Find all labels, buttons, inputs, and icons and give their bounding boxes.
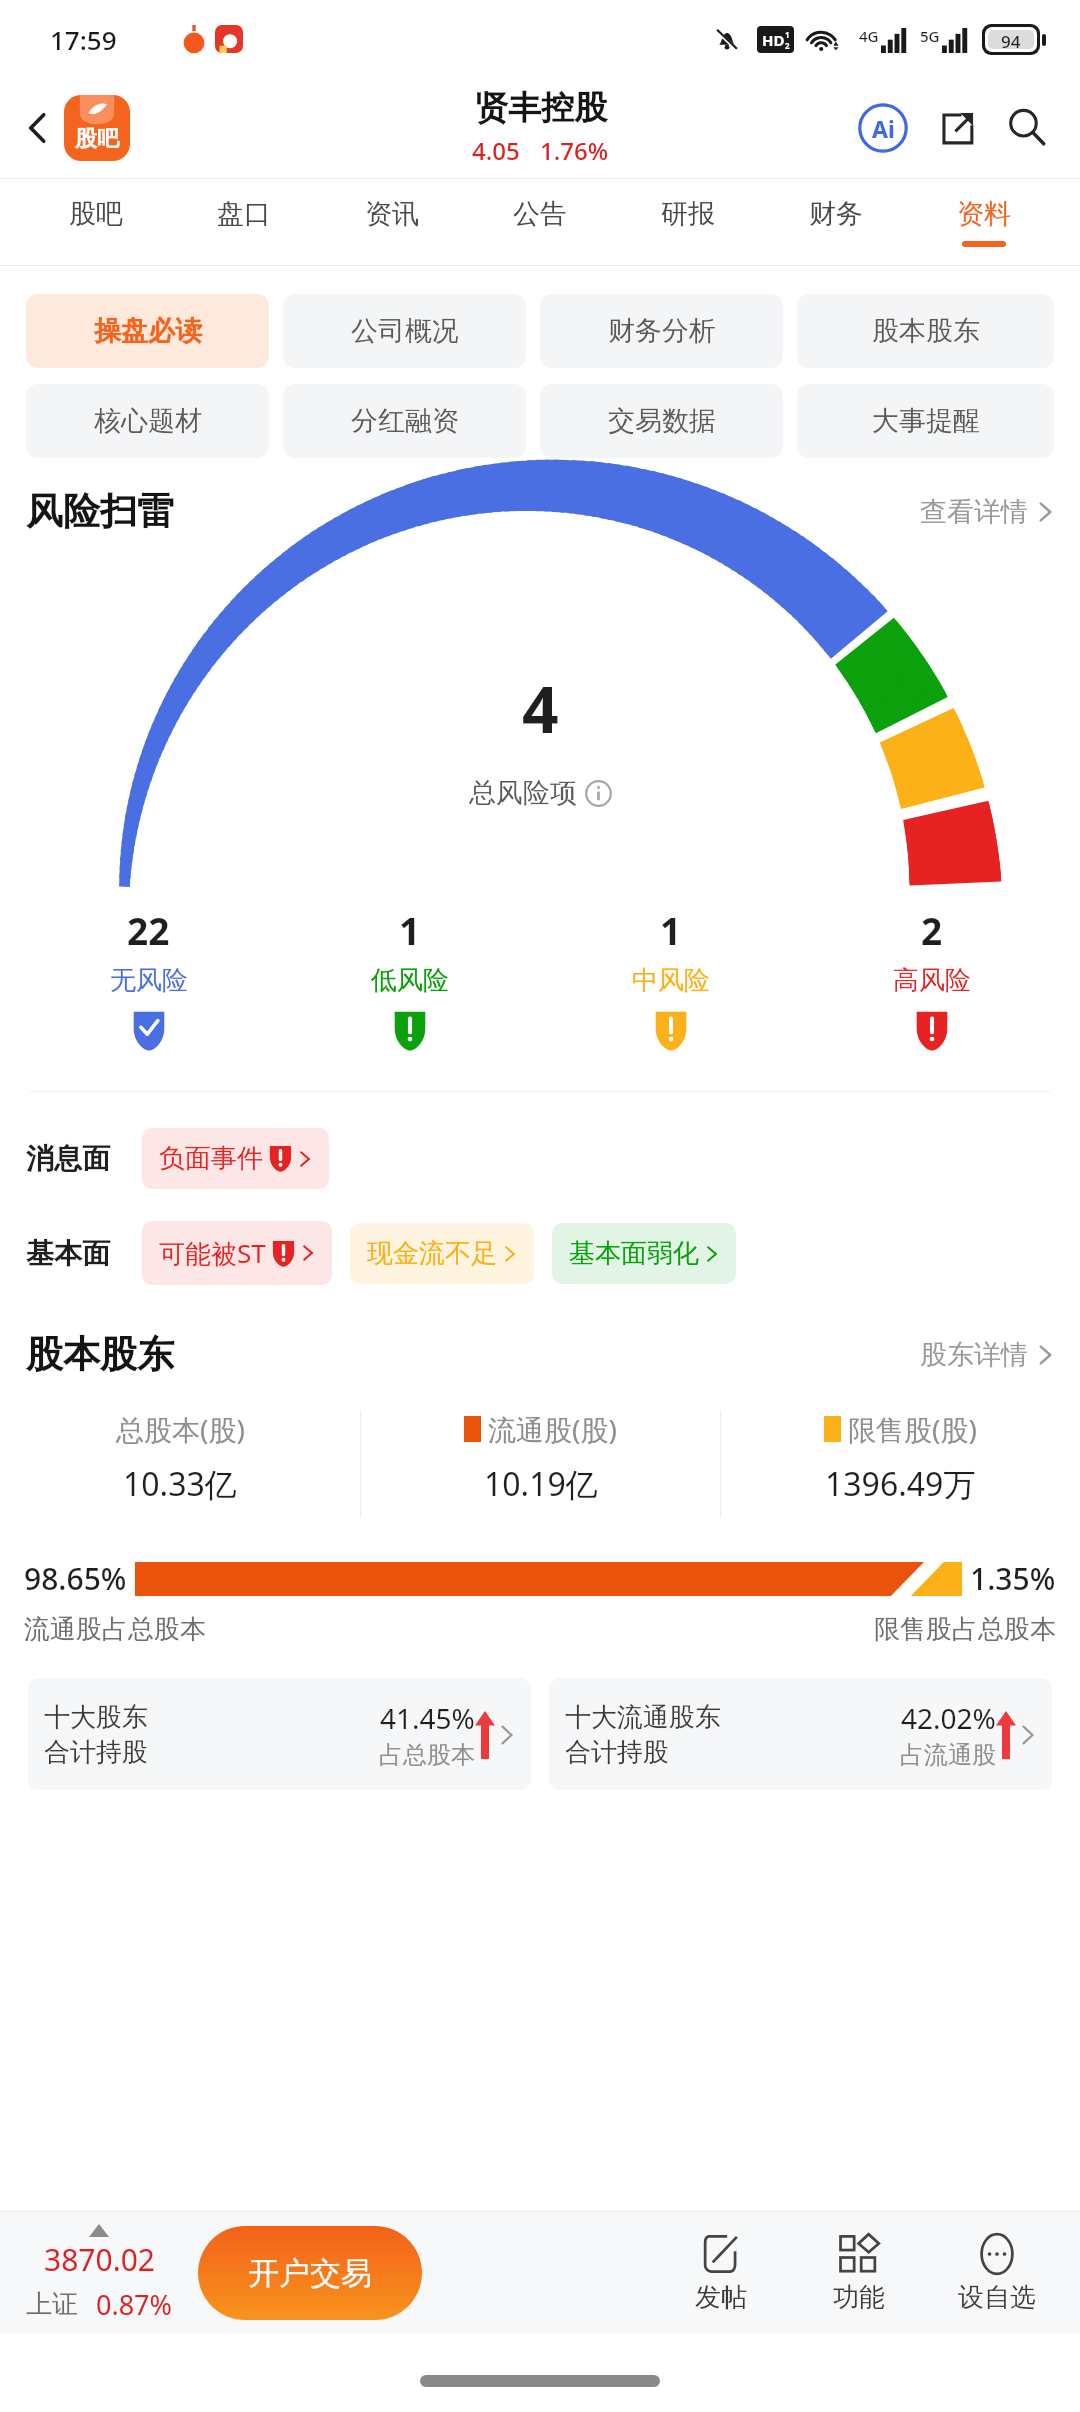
button[interactable]: 3870.02 [0, 2224, 198, 2323]
button[interactable]: 资讯 [318, 179, 466, 265]
staticText: 10.19亿 [484, 1462, 598, 1506]
staticText: 流通股占总股本 [24, 1613, 206, 1646]
staticText: Ai [872, 113, 895, 144]
staticText: 基本面 [26, 1236, 110, 1271]
button[interactable]: 十大流通股东 合计持股 [549, 1678, 1052, 1790]
staticText: 高风险 [893, 964, 971, 997]
button[interactable]: 交易数据 [540, 384, 783, 458]
staticText: 0.87% [96, 2286, 173, 2323]
staticText: 流通股(股) [488, 1410, 617, 1448]
staticText: 中风险 [632, 964, 710, 997]
staticText: 低风险 [371, 964, 449, 997]
button[interactable]: 盘口 [170, 179, 318, 265]
staticText: 4G [859, 26, 879, 46]
staticText: 消息面 [26, 1141, 110, 1176]
button[interactable]: 财务 [762, 179, 910, 265]
staticText: 上证 [26, 2288, 78, 2321]
staticText: 十大流通股东 合计持股 [565, 1701, 721, 1769]
staticText: 17:59 [50, 22, 117, 57]
staticText: 财务分析 [608, 314, 716, 348]
staticText: 股本股东 [26, 1331, 174, 1378]
button[interactable]: 十大股东 合计持股 [28, 1678, 531, 1790]
staticText: 现金流不足 [367, 1237, 497, 1270]
staticText: 42.02% [901, 1699, 996, 1737]
staticText: 3870.02 [44, 2239, 155, 2280]
staticText: 分红融资 [351, 404, 459, 438]
staticText: 查看详情 [920, 495, 1028, 529]
staticText: 98.65% [24, 1558, 127, 1599]
staticText: 设自选 [958, 2281, 1036, 2314]
button[interactable]: 股吧 [64, 95, 130, 161]
staticText: 可能被ST [159, 1235, 266, 1271]
staticText: 操盘必读 [94, 314, 202, 348]
staticText: 4.05 [472, 134, 520, 167]
button[interactable]: 公司概况 [283, 294, 526, 368]
button[interactable]: 公告 [466, 179, 614, 265]
button[interactable]: AI 助手 [852, 97, 914, 159]
button[interactable]: 查看详情 [920, 495, 1054, 529]
button[interactable]: 股东详情 [920, 1338, 1054, 1372]
button[interactable]: 设自选 [928, 2232, 1066, 2314]
button[interactable]: 资料 [910, 179, 1058, 265]
staticText: 十大股东 合计持股 [44, 1701, 148, 1769]
staticText: 1 [660, 905, 682, 955]
staticText: 1.35% [970, 1558, 1056, 1599]
staticText: 股本股东 [872, 314, 980, 348]
staticText: HD [762, 30, 785, 50]
button[interactable]: 财务分析 [540, 294, 783, 368]
staticText: 22 [127, 905, 170, 955]
staticText: 2 [921, 905, 943, 955]
button[interactable]: 基本面弱化 [552, 1223, 736, 1284]
button[interactable]: 操盘必读 [26, 294, 269, 368]
button[interactable]: Back [0, 90, 76, 166]
staticText: 负面事件 [159, 1142, 263, 1175]
staticText: 总股本(股) [116, 1410, 245, 1448]
button[interactable]: 可能被ST [142, 1221, 332, 1285]
staticText: 股吧 [69, 197, 123, 231]
staticText: 功能 [833, 2281, 885, 2314]
button[interactable]: Share [926, 97, 988, 159]
staticText: 公告 [513, 197, 567, 231]
staticText: 风险扫雷 [26, 488, 174, 535]
button[interactable]: 分红融资 [283, 384, 526, 458]
button[interactable]: 1 [279, 905, 540, 1051]
staticText: 开户交易 [248, 2254, 372, 2293]
staticText: 盘口 [217, 197, 271, 231]
staticText: 1 [399, 905, 421, 955]
button[interactable]: 股本股东 [797, 294, 1054, 368]
staticText: 公司概况 [351, 314, 459, 348]
staticText: 发帖 [695, 2281, 747, 2314]
button[interactable]: 核心题材 [26, 384, 269, 458]
staticText: 无风险 [110, 964, 188, 997]
button[interactable]: 负面事件 [142, 1128, 329, 1189]
button[interactable]: 大事提醒 [797, 384, 1054, 458]
button[interactable]: 2 [801, 905, 1062, 1051]
staticText: 核心题材 [94, 404, 202, 438]
staticText: 交易数据 [608, 404, 716, 438]
staticText: 41.45% [380, 1699, 475, 1737]
button[interactable]: 功能 [790, 2232, 928, 2314]
staticText: 研报 [661, 197, 715, 231]
button[interactable]: 发帖 [652, 2232, 790, 2314]
staticText: 2 [785, 40, 790, 51]
staticText: 贤丰控股 [475, 87, 607, 129]
staticText: 大事提醒 [872, 404, 980, 438]
button[interactable]: 开户交易 [198, 2226, 422, 2320]
staticText: 总风险项 [469, 776, 577, 810]
staticText: 1 [785, 29, 790, 40]
staticText: 1.76% [540, 134, 609, 167]
button[interactable]: 股吧 [22, 179, 170, 265]
staticText: 限售股(股) [848, 1410, 977, 1448]
button[interactable]: Search [996, 97, 1058, 159]
staticText: 94 [1001, 30, 1021, 49]
staticText: 财务 [809, 197, 863, 231]
button[interactable]: 研报 [614, 179, 762, 265]
staticText: 1396.49万 [825, 1462, 976, 1506]
staticText: 资料 [957, 197, 1011, 231]
staticText: 资讯 [365, 197, 419, 231]
button[interactable]: 22 [18, 905, 279, 1051]
button[interactable]: 1 [540, 905, 801, 1051]
staticText: 10.33亿 [123, 1462, 237, 1506]
staticText: 股吧 [75, 125, 119, 153]
button[interactable]: 现金流不足 [350, 1223, 534, 1284]
